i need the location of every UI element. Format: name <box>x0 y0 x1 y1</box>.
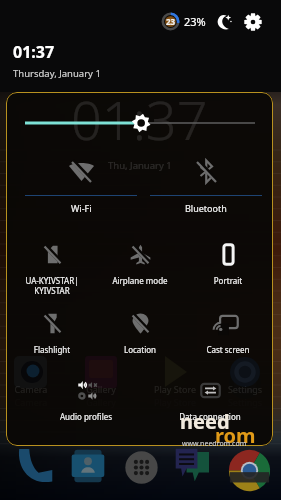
staticText: Flashlight <box>6 344 98 355</box>
staticText: Location <box>94 344 186 355</box>
button[interactable]: Bluetooth <box>150 159 262 214</box>
button[interactable]: Portrait <box>182 244 273 286</box>
button[interactable]: Do not disturb <box>216 13 233 30</box>
button[interactable]: Brightness <box>6 113 273 133</box>
button[interactable]: Wi-Fi <box>25 159 137 214</box>
button[interactable]: Flashlight <box>6 313 98 355</box>
staticText: Bluetooth <box>185 202 227 214</box>
button[interactable]: Settings <box>244 13 262 31</box>
staticText: Gallery <box>61 383 141 395</box>
staticText: need <box>180 408 230 435</box>
staticText: Airplane mode <box>94 275 186 286</box>
button[interactable]: Chrome <box>228 449 271 492</box>
staticText: 01:37 <box>71 92 208 156</box>
staticText: Play Store <box>135 396 215 408</box>
button[interactable]: Messages <box>175 448 209 482</box>
staticText: 23 <box>166 16 176 27</box>
staticText: www.needrom.com <box>182 439 247 449</box>
staticText: 01:37 <box>13 41 55 63</box>
staticText: Settings <box>205 383 273 395</box>
staticText: Settings <box>205 396 281 408</box>
staticText: rom <box>215 422 256 449</box>
staticText: Thu, January 1 <box>108 159 172 172</box>
staticText: Wi-Fi <box>71 202 92 214</box>
button[interactable]: Audio profiles <box>40 380 132 422</box>
button[interactable]: All apps <box>125 451 158 484</box>
button[interactable]: Cast screen <box>182 313 273 355</box>
staticText: Play Store <box>135 383 215 395</box>
button[interactable]: Location <box>94 313 186 355</box>
staticText: Gallery <box>61 396 141 408</box>
staticText: Data connection <box>164 411 256 422</box>
button[interactable]: Battery 23 percent <box>161 12 180 31</box>
staticText: Cast screen <box>182 344 273 355</box>
staticText: Thursday, January 1 <box>13 67 101 80</box>
staticText: Portrait <box>182 275 273 286</box>
staticText: UA-KYIVSTAR| KYIVSTAR <box>6 275 98 296</box>
button[interactable]: Phone <box>17 449 53 485</box>
button[interactable]: Airplane mode <box>94 244 186 286</box>
button[interactable]: Data connection <box>164 380 256 422</box>
staticText: 23% <box>184 14 206 29</box>
staticText: Audio profiles <box>40 411 132 422</box>
staticText: Camera <box>6 383 71 395</box>
button[interactable]: UA-KYIVSTAR| KYIVSTAR <box>6 244 98 296</box>
button[interactable]: Contacts <box>71 449 105 483</box>
staticText: Camera <box>0 396 71 408</box>
